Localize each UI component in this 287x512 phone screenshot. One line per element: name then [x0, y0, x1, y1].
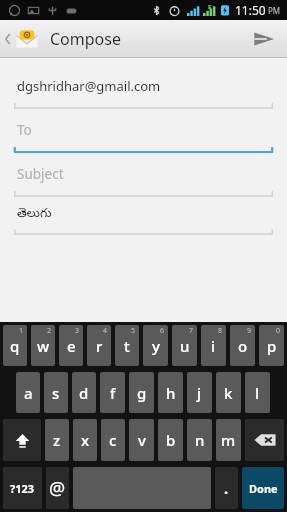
button[interactable]: e [59, 325, 83, 366]
button[interactable]: Navigate up [0, 20, 45, 58]
button[interactable]: d [72, 372, 96, 413]
staticText: E [208, 3, 212, 11]
button[interactable]: dgshridhar@gmail.com [0, 66, 287, 110]
button[interactable]: తెలుగు [0, 198, 287, 236]
button[interactable]: s [44, 372, 68, 413]
button[interactable]: To [0, 110, 287, 154]
button[interactable]: At sign [46, 467, 69, 509]
staticText: k [224, 383, 233, 403]
staticText: h [166, 383, 176, 403]
staticText: Compose [50, 28, 121, 50]
button[interactable]: g [129, 372, 154, 413]
staticText: To [17, 121, 32, 139]
button[interactable]: y [143, 325, 168, 366]
button[interactable]: l [245, 372, 270, 413]
staticText: q [10, 336, 20, 356]
staticText: g [137, 383, 147, 403]
staticText: z [53, 430, 61, 450]
staticText: 5 [131, 326, 136, 336]
button[interactable]: Done [242, 467, 284, 509]
staticText: 7 [189, 326, 194, 336]
staticText: e [67, 336, 76, 356]
button[interactable]: u [172, 325, 197, 366]
button[interactable]: p [259, 325, 284, 366]
staticText: c [109, 430, 117, 450]
button[interactable]: v [129, 419, 154, 461]
staticText: PM [268, 5, 281, 16]
button[interactable]: k [216, 372, 241, 413]
staticText: 4 [103, 326, 108, 336]
staticText: Subject [17, 165, 64, 183]
staticText: @ [49, 476, 66, 501]
staticText: y [152, 336, 160, 356]
button[interactable]: f [100, 372, 125, 413]
staticText: l [255, 383, 260, 403]
button[interactable]: Backspace [245, 419, 284, 461]
button[interactable]: b [158, 419, 183, 461]
button[interactable]: c [101, 419, 125, 461]
staticText: dgshridhar@gmail.com [17, 77, 161, 95]
button[interactable]: o [230, 325, 255, 366]
staticText: i [211, 336, 216, 356]
button[interactable]: t [115, 325, 139, 366]
staticText: 0 [276, 326, 281, 336]
staticText: 1 [19, 326, 24, 336]
staticText: 11:50 [235, 2, 266, 18]
button[interactable]: x [73, 419, 97, 461]
button[interactable]: i [201, 325, 226, 366]
button[interactable]: r [87, 325, 111, 366]
button[interactable]: j [187, 372, 212, 413]
button[interactable]: Subject [0, 154, 287, 198]
staticText: . [224, 478, 229, 498]
button[interactable]: z [45, 419, 69, 461]
staticText: v [138, 430, 146, 450]
button[interactable]: m [216, 419, 241, 461]
staticText: d [79, 383, 89, 403]
button[interactable]: Send [241, 20, 287, 58]
staticText: t [124, 336, 130, 356]
button[interactable]: Shift [3, 419, 41, 461]
button[interactable]: h [158, 372, 183, 413]
staticText: r [96, 336, 103, 356]
staticText: 8 [218, 326, 223, 336]
button[interactable]: n [187, 419, 212, 461]
button[interactable]: Symbols [3, 467, 42, 509]
staticText: o [238, 336, 248, 356]
staticText: n [195, 430, 205, 450]
button[interactable]: w [31, 325, 55, 366]
staticText: Done [249, 481, 278, 496]
staticText: తెలుగు [17, 206, 52, 223]
staticText: f [110, 383, 116, 403]
staticText: u [180, 336, 190, 356]
staticText: ?123 [10, 481, 35, 496]
staticText: 3 [75, 326, 80, 336]
staticText: j [197, 383, 202, 403]
button[interactable]: Period [215, 467, 238, 509]
staticText: b [166, 430, 176, 450]
staticText: 6 [160, 326, 165, 336]
staticText: 9 [247, 326, 252, 336]
staticText: m [221, 430, 236, 450]
staticText: s [52, 383, 60, 403]
button[interactable]: a [16, 372, 40, 413]
button[interactable]: q [3, 325, 27, 366]
staticText: a [24, 383, 33, 403]
staticText: p [267, 336, 277, 356]
staticText: w [37, 336, 50, 356]
staticText: 2 [47, 326, 52, 336]
staticText: x [81, 430, 90, 450]
